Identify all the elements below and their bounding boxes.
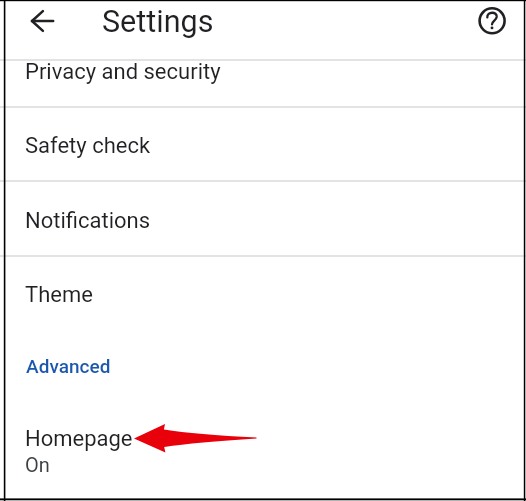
staticText: Advanced [26,355,111,377]
staticText: Theme [25,282,93,308]
button[interactable] [0,333,526,397]
staticText: Privacy and security [25,59,221,85]
button[interactable]: Help and feedback [470,0,514,42]
button[interactable] [0,106,526,180]
staticText: Safety check [25,133,151,159]
button[interactable]: Navigate up [20,0,63,42]
staticText: Notifications [25,208,151,234]
staticText: Settings [102,4,214,40]
button[interactable] [0,180,526,255]
button[interactable] [0,397,526,480]
staticText: Homepage [25,426,133,452]
button[interactable] [0,59,526,106]
staticText: On [25,453,50,476]
button[interactable] [0,255,526,329]
